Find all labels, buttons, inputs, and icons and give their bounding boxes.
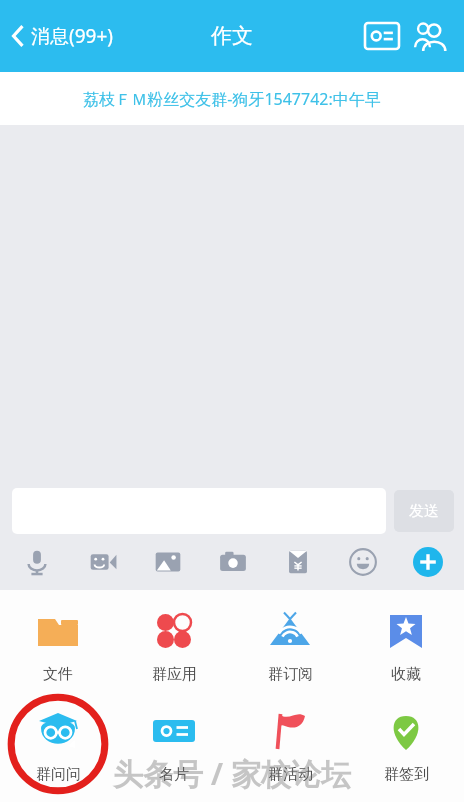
staticText: 荔枝ＦＭ粉丝交友群-狗牙1547742:中午早 xyxy=(83,88,381,110)
button[interactable]: Members xyxy=(406,12,454,60)
staticText: 头条号 / 家校论坛 xyxy=(113,753,352,794)
button[interactable]: Red packet xyxy=(265,534,330,590)
staticText: 群问问 xyxy=(36,765,81,784)
staticText: 收藏 xyxy=(391,665,421,684)
button[interactable]: Emoji xyxy=(330,534,395,590)
button[interactable]: 群活动 xyxy=(232,694,348,794)
button[interactable]: 收藏 xyxy=(348,594,464,694)
button[interactable]: 文件 xyxy=(0,594,116,694)
button[interactable]: Voice message xyxy=(4,534,70,590)
button[interactable]: 群签到 xyxy=(348,694,464,794)
button[interactable]: 群应用 xyxy=(116,594,232,694)
button[interactable]: Group card xyxy=(358,12,406,60)
staticText: 群订阅 xyxy=(268,665,313,684)
button[interactable]: 名片 xyxy=(116,694,232,794)
button[interactable]: Video xyxy=(70,534,135,590)
staticText: 消息(99+) xyxy=(31,23,114,49)
staticText: 群活动 xyxy=(268,765,313,784)
staticText: 群签到 xyxy=(384,765,429,784)
button[interactable]: 消息(99+) xyxy=(0,17,122,55)
button[interactable]: 荔枝ＦＭ粉丝交友群-狗牙1547742:中午早 xyxy=(0,72,464,125)
staticText: 群应用 xyxy=(152,665,197,684)
button[interactable]: Camera xyxy=(200,534,265,590)
button[interactable]: 群订阅 xyxy=(232,594,348,694)
button[interactable]: More xyxy=(395,534,460,590)
button[interactable]: 发送 xyxy=(394,490,454,532)
button[interactable]: Photo xyxy=(135,534,200,590)
staticText: 文件 xyxy=(43,665,73,684)
staticText: 作文 xyxy=(211,23,253,49)
button[interactable]: 群问问 xyxy=(0,694,116,794)
staticText: 名片 xyxy=(159,765,189,784)
staticText: 发送 xyxy=(409,502,439,521)
